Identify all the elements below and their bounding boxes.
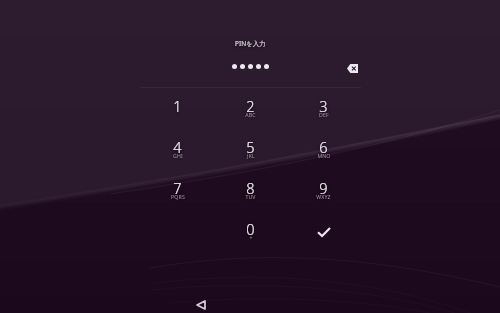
staticText: TUV [245,193,256,200]
button[interactable]: 9 [287,173,360,214]
staticText: 2 [246,96,255,116]
staticText: WXYZ [316,193,331,200]
staticText: GHI [173,152,183,159]
button[interactable]: 7 [141,173,214,214]
staticText: PINを入力 [235,39,266,48]
staticText: 6 [319,137,328,157]
staticText: 0 [246,219,255,239]
button[interactable]: 6 [287,132,360,173]
staticText: 7 [173,178,182,198]
button[interactable]: 1 [141,91,214,132]
staticText: 3 [319,96,328,116]
staticText: 9 [319,178,328,198]
staticText: PQRS [171,193,185,200]
button[interactable]: 3 [287,91,360,132]
button[interactable]: Backspace [340,56,364,80]
staticText: MNO [317,152,331,159]
button[interactable]: Back [190,294,211,313]
button[interactable]: 2 [214,91,287,132]
button[interactable]: 0 [214,214,287,255]
button[interactable]: 4 [141,132,214,173]
staticText: 5 [246,137,255,157]
staticText: JKL [247,152,255,159]
staticText: 8 [246,178,255,198]
button[interactable]: 8 [214,173,287,214]
staticText: DEF [319,111,329,118]
button[interactable]: 5 [214,132,287,173]
staticText: 4 [173,137,182,157]
staticText: 1 [173,96,182,116]
staticText: + [249,234,253,241]
button[interactable]: Confirm PIN [287,214,360,255]
staticText: ABC [245,111,256,118]
